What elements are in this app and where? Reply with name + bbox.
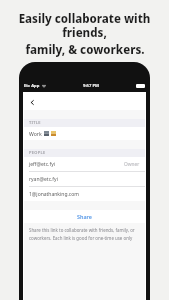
staticText: jeff@etc.fyi xyxy=(29,161,55,168)
button[interactable]: Share xyxy=(24,210,145,223)
staticText: Share xyxy=(77,213,92,220)
staticText: Share this link to collaborate with frie… xyxy=(29,227,135,233)
staticText: 9:57 PM xyxy=(83,83,99,89)
button[interactable]: ryan@etc.fyi xyxy=(24,172,145,186)
staticText: Etc App xyxy=(24,83,40,89)
staticText: Work xyxy=(29,130,42,137)
staticText: 1@jonathanking.com xyxy=(29,191,79,198)
staticText: coworkers. Each link is good for one-tim… xyxy=(29,235,133,241)
button[interactable]: Back xyxy=(26,96,38,108)
button[interactable]: jeff@etc.fyi xyxy=(24,157,145,171)
staticText: PEOPLE xyxy=(29,150,46,155)
staticText: family, & coworkers. xyxy=(25,42,145,58)
staticText: TITLE xyxy=(29,120,41,125)
button[interactable]: 1@jonathanking.com xyxy=(24,187,145,201)
staticText: Easily collaborate with friends, xyxy=(8,11,161,40)
staticText: ryan@etc.fyi xyxy=(29,176,58,183)
button[interactable]: Work xyxy=(24,127,145,140)
staticText: Owner xyxy=(124,161,140,168)
